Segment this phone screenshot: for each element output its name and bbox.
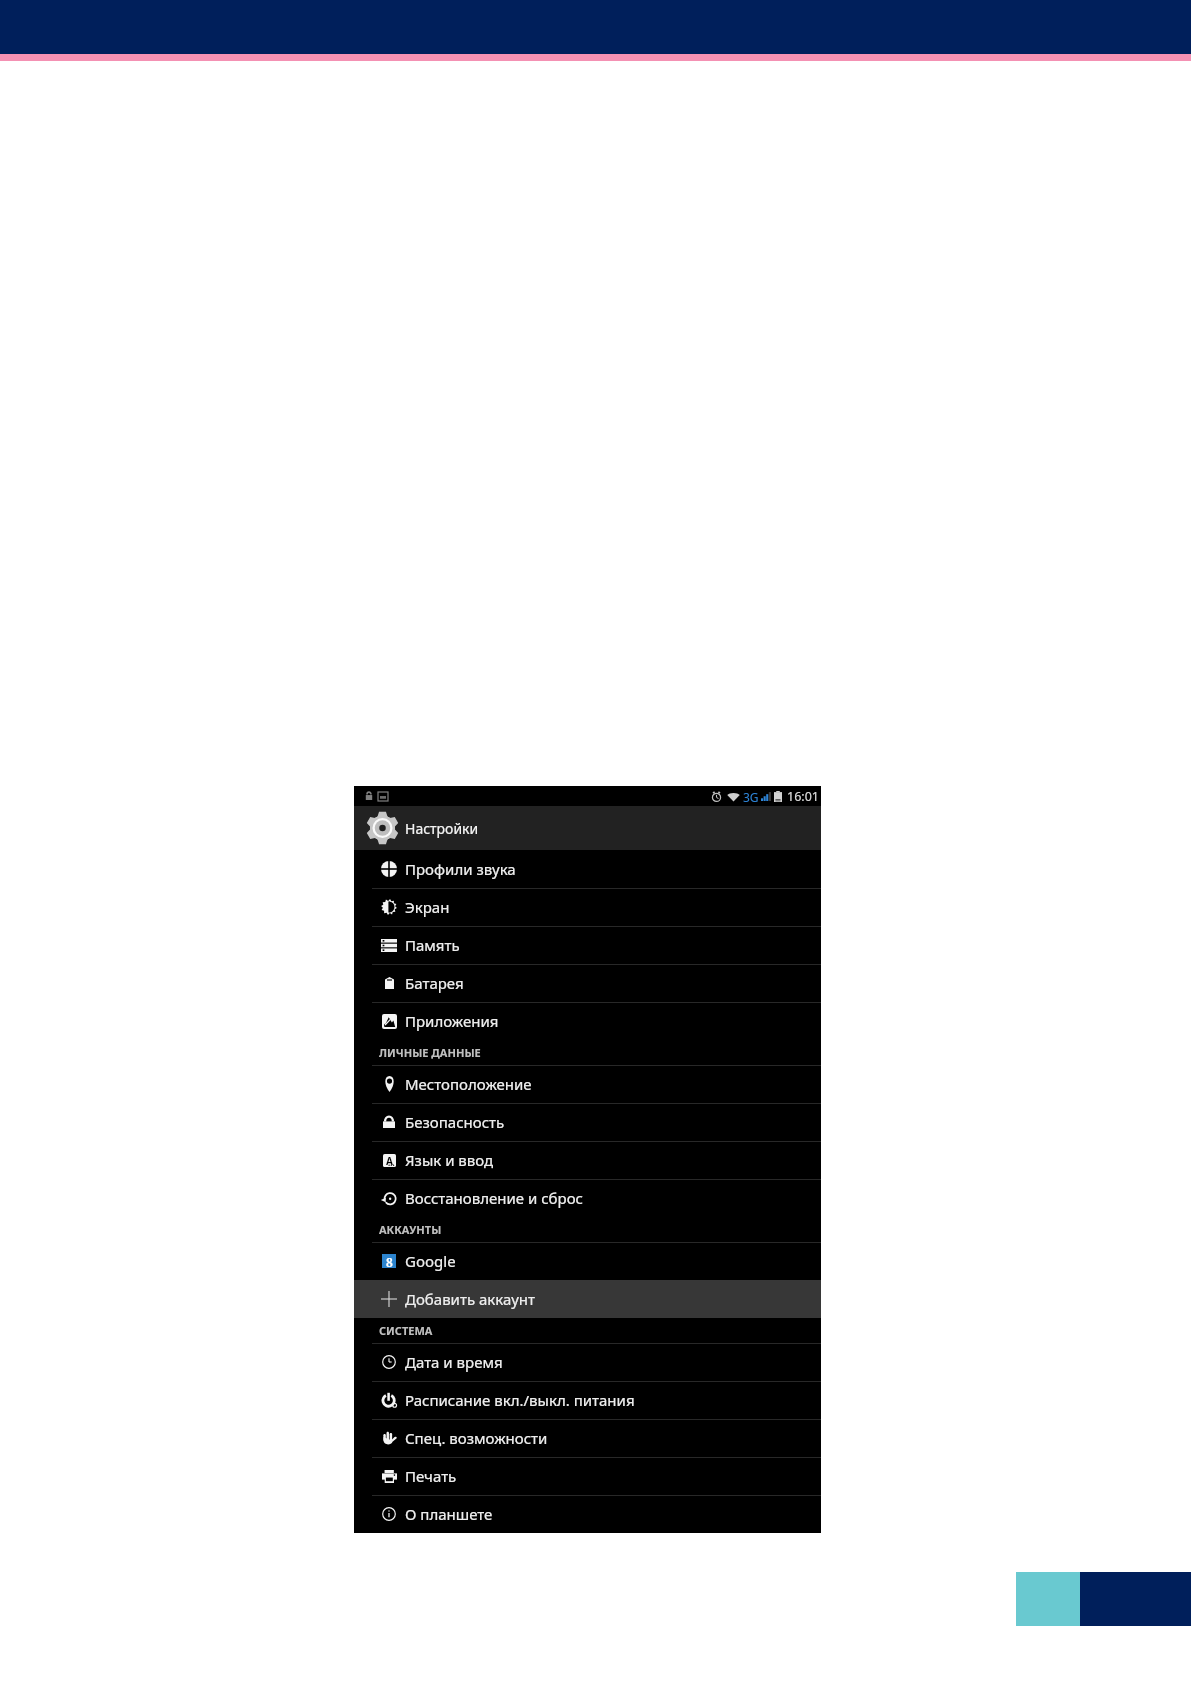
button[interactable]: Восстановление и сброс [354, 1179, 821, 1217]
staticText: 8 [386, 1254, 393, 1268]
staticText: A [386, 1154, 393, 1167]
staticText: Google [405, 1251, 456, 1271]
staticText: Профили звука [405, 859, 516, 879]
staticText: Расписание вкл./выкл. питания [405, 1390, 635, 1410]
button[interactable]: 8 [354, 1242, 821, 1280]
staticText: Спец. возможности [405, 1428, 548, 1448]
button[interactable]: Добавить аккаунт [354, 1280, 821, 1318]
staticText: Безопасность [405, 1112, 505, 1132]
button[interactable]: Дата и время [354, 1343, 821, 1381]
staticText: Добавить аккаунт [405, 1289, 535, 1309]
button[interactable]: Спец. возможности [354, 1419, 821, 1457]
staticText: Местоположение [405, 1074, 532, 1094]
staticText: ЛИЧНЫЕ ДАННЫЕ [379, 1045, 481, 1060]
staticText: СИСТЕМА [379, 1323, 433, 1338]
button[interactable]: О планшете [354, 1495, 821, 1533]
staticText: АККАУНТЫ [379, 1222, 442, 1237]
staticText: Приложения [405, 1011, 499, 1031]
staticText: Батарея [405, 973, 464, 993]
button[interactable]: Память [354, 926, 821, 964]
button[interactable]: Экран [354, 888, 821, 926]
staticText: 16:01 [787, 788, 819, 805]
staticText: Печать [405, 1466, 457, 1486]
staticText: Язык и ввод [405, 1150, 494, 1170]
staticText: О планшете [405, 1504, 493, 1524]
staticText: Дата и время [405, 1352, 503, 1372]
staticText: Экран [405, 897, 450, 917]
button[interactable]: Батарея [354, 964, 821, 1002]
staticText: Память [405, 935, 460, 955]
staticText: Восстановление и сброс [405, 1188, 583, 1208]
button[interactable]: Местоположение [354, 1065, 821, 1103]
button[interactable]: Печать [354, 1457, 821, 1495]
button[interactable]: Расписание вкл./выкл. питания [354, 1381, 821, 1419]
button[interactable]: Приложения [354, 1002, 821, 1040]
button[interactable]: A [354, 1141, 821, 1179]
staticText: 3G [743, 789, 759, 805]
button[interactable]: Безопасность [354, 1103, 821, 1141]
button[interactable]: Профили звука [354, 850, 821, 888]
button[interactable]: Настройки [354, 806, 821, 850]
staticText: Настройки [405, 819, 479, 838]
